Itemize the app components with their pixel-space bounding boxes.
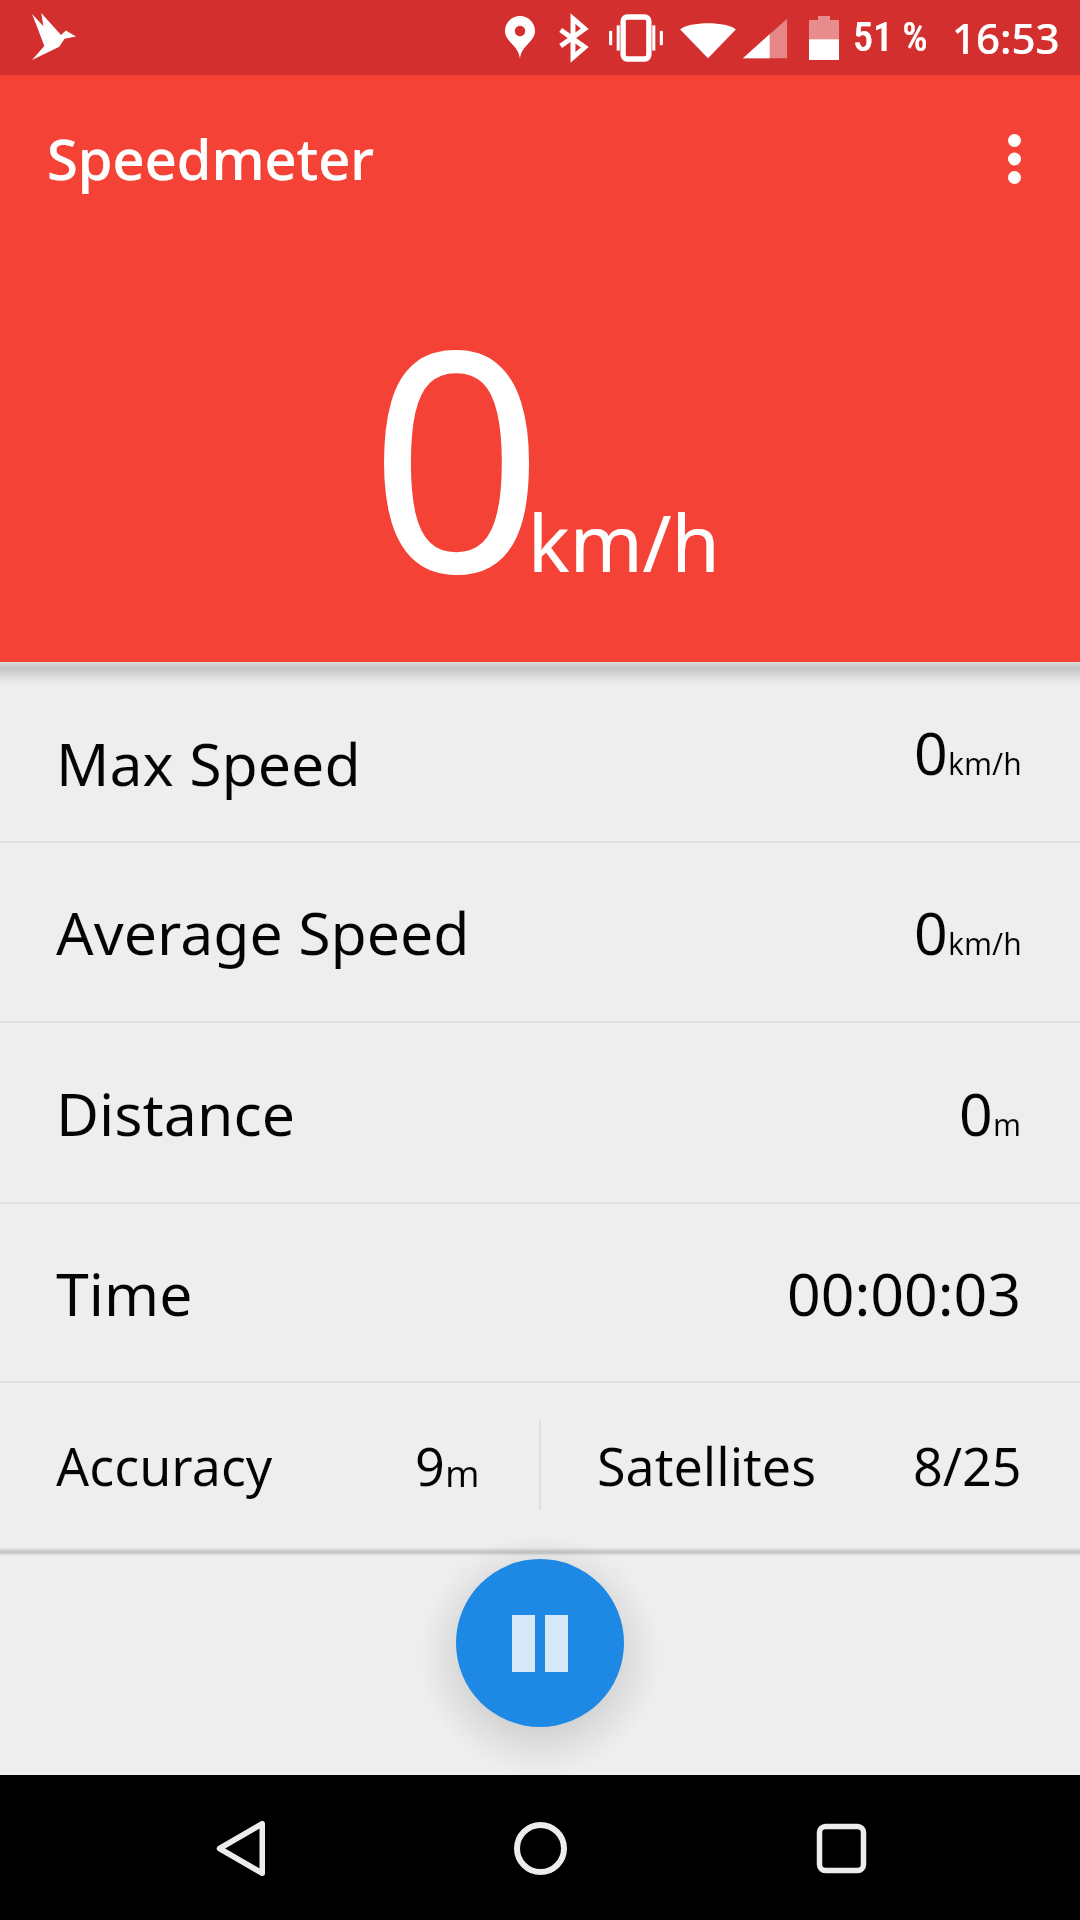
staticText: 9 <box>415 1430 445 1501</box>
button[interactable]: Accuracy <box>0 1383 539 1547</box>
staticText: Distance <box>56 1073 296 1153</box>
staticText: 00:00:03 <box>787 1253 1022 1333</box>
staticText: 0 <box>369 245 545 662</box>
button[interactable]: Average Speed <box>0 843 1080 1021</box>
button[interactable]: More options <box>968 105 1064 201</box>
button[interactable]: Distance <box>0 1023 1080 1202</box>
button[interactable]: Home <box>475 1783 605 1913</box>
staticText: km/h <box>948 923 1022 964</box>
staticText: Max Speed <box>56 723 361 803</box>
staticText: 51 % <box>853 14 928 61</box>
staticText: km/h <box>528 489 720 595</box>
staticText: Time <box>56 1253 193 1333</box>
staticText: 0 <box>914 892 948 972</box>
staticText: 0 <box>959 1073 993 1153</box>
button[interactable]: Pause <box>456 1559 624 1727</box>
button[interactable]: Max Speed <box>0 662 1080 841</box>
button[interactable]: Time <box>0 1204 1080 1381</box>
staticText: m <box>993 1104 1022 1145</box>
staticText: m <box>445 1447 480 1497</box>
button[interactable]: Recents <box>776 1783 906 1913</box>
button[interactable]: Satellites <box>541 1383 1080 1547</box>
staticText: Average Speed <box>56 892 470 972</box>
staticText: Accuracy <box>56 1430 273 1501</box>
staticText: Satellites <box>597 1430 817 1501</box>
staticText: Speedmeter <box>47 120 374 196</box>
staticText: 8/25 <box>913 1430 1022 1501</box>
staticText: 0 <box>914 712 948 792</box>
button[interactable]: Back <box>175 1783 305 1913</box>
staticText: km/h <box>948 743 1022 784</box>
staticText: 16:53 <box>952 9 1060 66</box>
